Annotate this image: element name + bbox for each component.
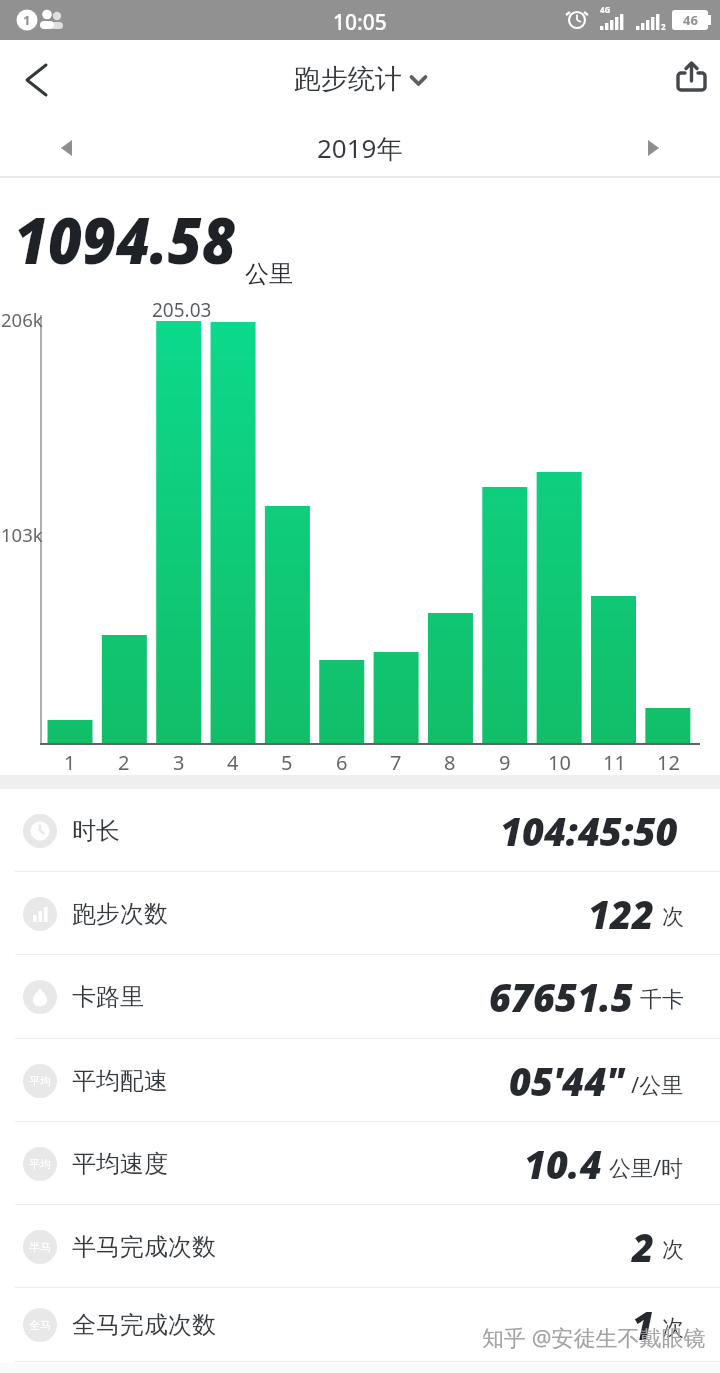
- staticText: 10.4: [524, 1138, 602, 1190]
- button[interactable]: 卡路里: [0, 955, 720, 1039]
- staticText: 公里: [245, 259, 293, 289]
- staticText: 3: [173, 749, 185, 776]
- staticText: 次: [662, 1314, 684, 1342]
- button[interactable]: 平均: [0, 1039, 720, 1122]
- staticText: 全马完成次数: [72, 1310, 216, 1340]
- staticText: 8: [444, 749, 456, 776]
- staticText: 103k: [1, 522, 43, 547]
- button[interactable]: 跑步次数: [0, 872, 720, 955]
- staticText: 2019年: [317, 130, 403, 166]
- staticText: 卡路里: [72, 982, 144, 1012]
- staticText: 10: [548, 749, 571, 776]
- staticText: 206k: [1, 307, 43, 332]
- staticText: 平均速度: [72, 1149, 168, 1179]
- staticText: 104:45:50: [500, 805, 678, 857]
- staticText: 跑步统计: [294, 62, 402, 96]
- staticText: 次: [662, 903, 684, 931]
- button[interactable]: [0, 118, 90, 178]
- staticText: 11: [603, 749, 626, 776]
- staticText: 10:05: [333, 8, 387, 37]
- button[interactable]: 半马: [0, 1205, 720, 1288]
- staticText: 千卡: [640, 986, 684, 1014]
- staticText: 时长: [72, 816, 120, 846]
- staticText: 平均配速: [72, 1066, 168, 1096]
- staticText: 全马: [29, 1318, 51, 1332]
- button[interactable]: 跑步统计: [294, 62, 427, 96]
- staticText: 半马: [29, 1240, 51, 1254]
- button[interactable]: 平均: [0, 1122, 720, 1205]
- staticText: 跑步次数: [72, 899, 168, 929]
- staticText: 1: [23, 11, 31, 29]
- button[interactable]: [630, 118, 720, 178]
- staticText: 205.03: [152, 297, 212, 323]
- staticText: 4: [227, 749, 239, 776]
- staticText: 4G: [600, 4, 611, 15]
- staticText: 46: [683, 11, 698, 29]
- staticText: 67651.5: [489, 971, 633, 1023]
- staticText: 6: [336, 749, 348, 776]
- button[interactable]: 时长: [0, 789, 720, 872]
- staticText: 次: [662, 1236, 684, 1264]
- staticText: 5: [281, 749, 293, 776]
- staticText: 1: [64, 749, 76, 776]
- staticText: 7: [390, 749, 402, 776]
- staticText: 1094.58: [14, 197, 236, 283]
- staticText: 12: [657, 749, 680, 776]
- staticText: 半马完成次数: [72, 1232, 216, 1262]
- staticText: 2: [661, 21, 666, 32]
- button[interactable]: [0, 40, 72, 118]
- staticText: 2: [118, 749, 130, 776]
- staticText: 2: [632, 1221, 655, 1273]
- staticText: 公里/时: [609, 1152, 684, 1182]
- staticText: 1: [632, 1299, 655, 1351]
- staticText: 平均: [29, 1074, 51, 1088]
- staticText: 05'44": [509, 1055, 624, 1107]
- button[interactable]: [656, 40, 720, 118]
- staticText: 122: [588, 888, 655, 940]
- button[interactable]: 全马: [0, 1288, 720, 1362]
- staticText: 平均: [29, 1157, 51, 1171]
- staticText: 9: [499, 749, 511, 776]
- staticText: /公里: [631, 1069, 684, 1099]
- staticText: 知乎 @安徒生不戴眼镜: [482, 1322, 706, 1352]
